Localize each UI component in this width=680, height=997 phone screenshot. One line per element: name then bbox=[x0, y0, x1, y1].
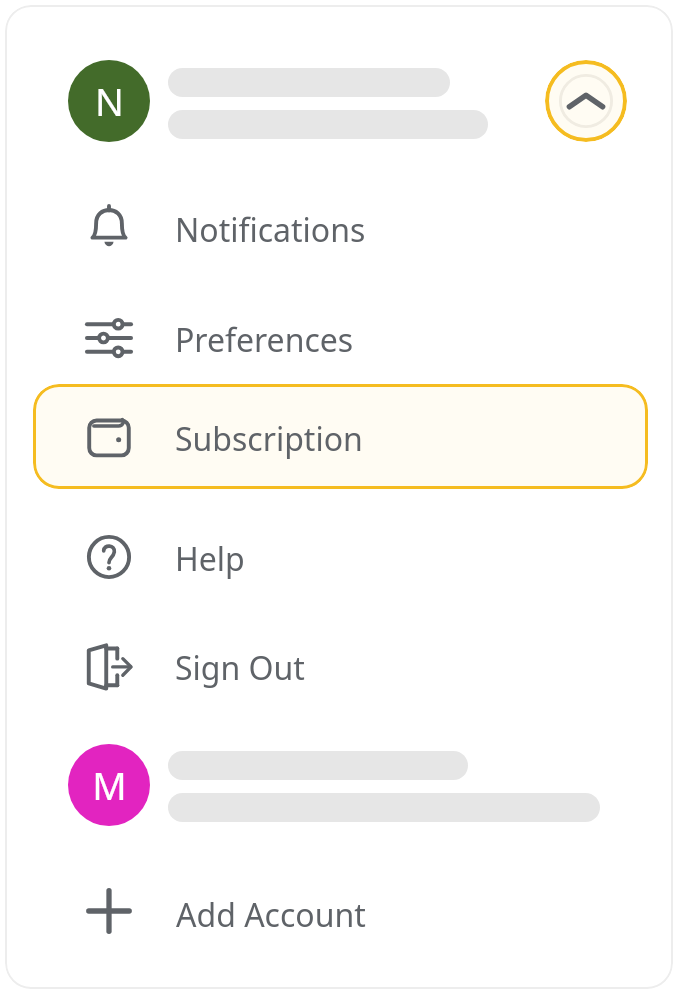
button[interactable]: Collapse account list bbox=[545, 60, 627, 142]
button[interactable]: M bbox=[40, 736, 640, 834]
button[interactable]: Preferences bbox=[33, 285, 648, 390]
staticText: M bbox=[92, 759, 127, 811]
button[interactable]: Sign Out bbox=[33, 613, 648, 718]
button[interactable]: Help bbox=[33, 504, 648, 609]
button[interactable]: N bbox=[40, 52, 640, 150]
staticText: N bbox=[95, 75, 124, 127]
staticText: Notifications bbox=[175, 208, 366, 252]
staticText: Help bbox=[175, 537, 245, 581]
button[interactable]: Notifications bbox=[33, 175, 648, 280]
staticText: Add Account bbox=[176, 893, 366, 937]
staticText: Subscription bbox=[175, 417, 363, 461]
staticText: Preferences bbox=[175, 318, 354, 362]
button[interactable]: Subscription bbox=[33, 384, 648, 489]
button[interactable]: Add Account bbox=[40, 866, 640, 956]
staticText: Sign Out bbox=[175, 646, 305, 690]
